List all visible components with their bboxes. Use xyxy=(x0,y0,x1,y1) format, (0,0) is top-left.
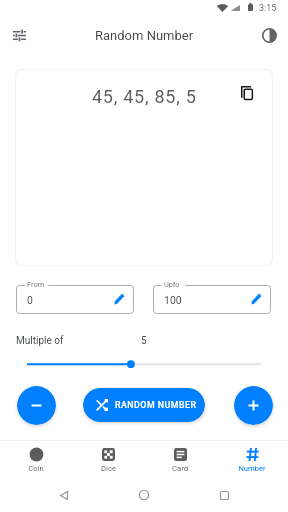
staticText: 0 xyxy=(27,294,33,306)
button[interactable]: Increase xyxy=(234,386,273,425)
button[interactable] xyxy=(27,356,261,372)
button[interactable]: Copy result xyxy=(235,81,259,105)
staticText: 100 xyxy=(164,294,182,306)
staticText: Upto xyxy=(164,280,180,289)
staticText: Card xyxy=(172,464,188,473)
button[interactable]: Card xyxy=(144,441,216,483)
staticText: 5 xyxy=(141,335,147,347)
staticText: RANDOM NUMBER xyxy=(115,400,197,410)
staticText: Number xyxy=(238,464,266,473)
button[interactable]: Toggle dark mode xyxy=(256,22,282,48)
button[interactable]: RANDOM NUMBER xyxy=(83,388,205,422)
button[interactable]: Settings xyxy=(6,22,32,48)
button[interactable]: Edit Upto xyxy=(247,288,267,308)
staticText: Dice xyxy=(101,464,116,473)
staticText: 45, 45, 85, 5 xyxy=(92,86,197,107)
staticText: Multiple of xyxy=(16,335,64,347)
button[interactable]: Home xyxy=(132,483,156,507)
staticText: Coin xyxy=(28,464,44,473)
button[interactable]: Edit From xyxy=(110,288,130,308)
staticText: 3:15 xyxy=(259,3,277,14)
button[interactable]: Number xyxy=(216,441,288,483)
button[interactable]: Decrease xyxy=(17,386,56,425)
button[interactable]: Back xyxy=(52,483,76,507)
button[interactable]: Dice xyxy=(72,441,144,483)
staticText: From xyxy=(27,280,45,289)
staticText: Random Number xyxy=(95,28,194,43)
button[interactable]: Coin xyxy=(0,441,72,483)
button[interactable]: Recent apps xyxy=(212,483,236,507)
